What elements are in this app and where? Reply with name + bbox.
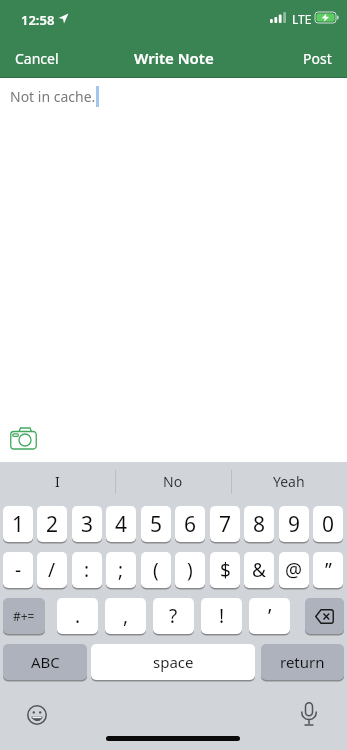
staticText: 4 (115, 510, 128, 539)
staticText: 2 (46, 510, 59, 539)
button[interactable]: 5 (141, 506, 171, 542)
staticText: 3 (81, 510, 94, 539)
button[interactable]: I (12, 462, 102, 500)
staticText: 0 (322, 510, 335, 539)
button[interactable]: space (91, 644, 255, 680)
button[interactable]: ABC (3, 644, 87, 680)
staticText: : (84, 557, 90, 583)
staticText: ; (118, 557, 124, 583)
button[interactable]: 1 (3, 506, 33, 542)
staticText: 1 (12, 510, 25, 539)
staticText: , (123, 603, 129, 629)
button[interactable] (10, 427, 37, 450)
button[interactable]: 4 (106, 506, 136, 542)
button[interactable]: 0 (313, 506, 343, 542)
staticText: $ (220, 557, 231, 583)
staticText: 7 (219, 510, 232, 539)
staticText: ” (325, 557, 332, 583)
staticText: space (153, 652, 194, 672)
button[interactable]: , (105, 598, 146, 634)
staticText: 9 (288, 510, 301, 539)
button[interactable]: Cancel (15, 49, 59, 68)
button[interactable]: - (3, 552, 33, 588)
button[interactable]: #+= (3, 598, 45, 634)
button[interactable]: @ (279, 552, 309, 588)
staticText: return (280, 652, 325, 672)
button[interactable]: 7 (210, 506, 240, 542)
button[interactable]: ! (201, 598, 242, 634)
staticText: #+= (13, 608, 35, 624)
staticText: 5 (150, 510, 163, 539)
staticText: ( (153, 557, 159, 583)
button[interactable] (301, 702, 317, 728)
staticText: & (252, 557, 266, 583)
button[interactable]: ; (106, 552, 136, 588)
staticText: 8 (253, 510, 266, 539)
button[interactable]: 3 (72, 506, 102, 542)
button[interactable]: : (72, 552, 102, 588)
staticText: Post (303, 49, 332, 68)
button[interactable]: ( (141, 552, 171, 588)
button[interactable]: ’ (249, 598, 290, 634)
button[interactable]: 9 (279, 506, 309, 542)
staticText: 12:58 (21, 11, 55, 29)
button[interactable]: $ (210, 552, 240, 588)
button[interactable] (305, 598, 344, 634)
button[interactable]: Yeah (244, 462, 334, 500)
button[interactable]: 8 (244, 506, 274, 542)
staticText: I (55, 472, 60, 491)
staticText: Cancel (15, 49, 59, 68)
button[interactable]: return (261, 644, 344, 680)
button[interactable]: & (244, 552, 274, 588)
staticText: . (75, 603, 81, 629)
button[interactable]: ? (153, 598, 194, 634)
button[interactable] (27, 705, 47, 725)
staticText: / (48, 557, 56, 583)
button[interactable]: ) (175, 552, 205, 588)
button[interactable]: ” (313, 552, 343, 588)
staticText: ’ (268, 603, 272, 629)
staticText: @ (285, 557, 303, 583)
button[interactable]: No (128, 462, 218, 500)
staticText: - (15, 557, 22, 583)
staticText: ? (169, 603, 178, 629)
button[interactable]: . (57, 598, 98, 634)
staticText: 6 (184, 510, 197, 539)
staticText: No (163, 472, 183, 491)
staticText: ABC (31, 652, 60, 672)
button[interactable]: 6 (175, 506, 205, 542)
staticText: Not in cache. (10, 87, 96, 106)
button[interactable]: 2 (37, 506, 67, 542)
staticText: LTE (292, 11, 312, 27)
button[interactable]: / (37, 552, 67, 588)
staticText: ! (219, 603, 225, 629)
staticText: Write Note (134, 48, 214, 68)
staticText: Yeah (273, 472, 305, 491)
staticText: ) (187, 557, 193, 583)
button[interactable]: Post (303, 49, 332, 68)
